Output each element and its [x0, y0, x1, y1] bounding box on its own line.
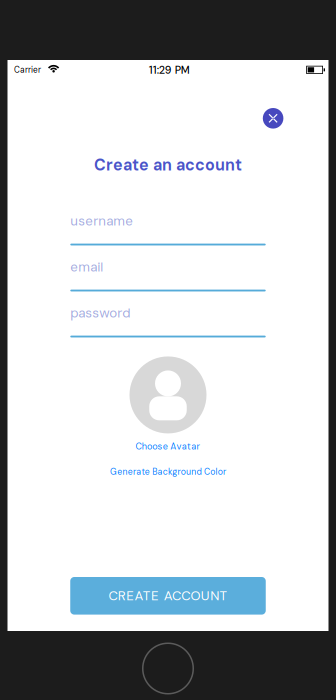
button[interactable]: Generate Background Color [110, 452, 226, 477]
staticText: Carrier [14, 65, 41, 75]
staticText: username [70, 212, 133, 230]
button[interactable]: Close [263, 108, 283, 129]
staticText: 11:29 PM [149, 63, 190, 77]
button[interactable]: CREATE ACCOUNT [70, 577, 266, 615]
button[interactable]: Choose Avatar [135, 433, 200, 452]
staticText: CREATE ACCOUNT [109, 587, 227, 604]
staticText: Create an account [94, 155, 242, 175]
staticText: password [70, 304, 130, 322]
button[interactable]: Choose Avatar image [129, 337, 206, 433]
staticText: Choose Avatar [135, 440, 200, 452]
button[interactable]: username [70, 213, 266, 245]
button[interactable]: password [70, 305, 266, 337]
staticText: Generate Background Color [110, 466, 226, 477]
staticText: email [70, 258, 103, 276]
button[interactable]: email [70, 259, 266, 291]
